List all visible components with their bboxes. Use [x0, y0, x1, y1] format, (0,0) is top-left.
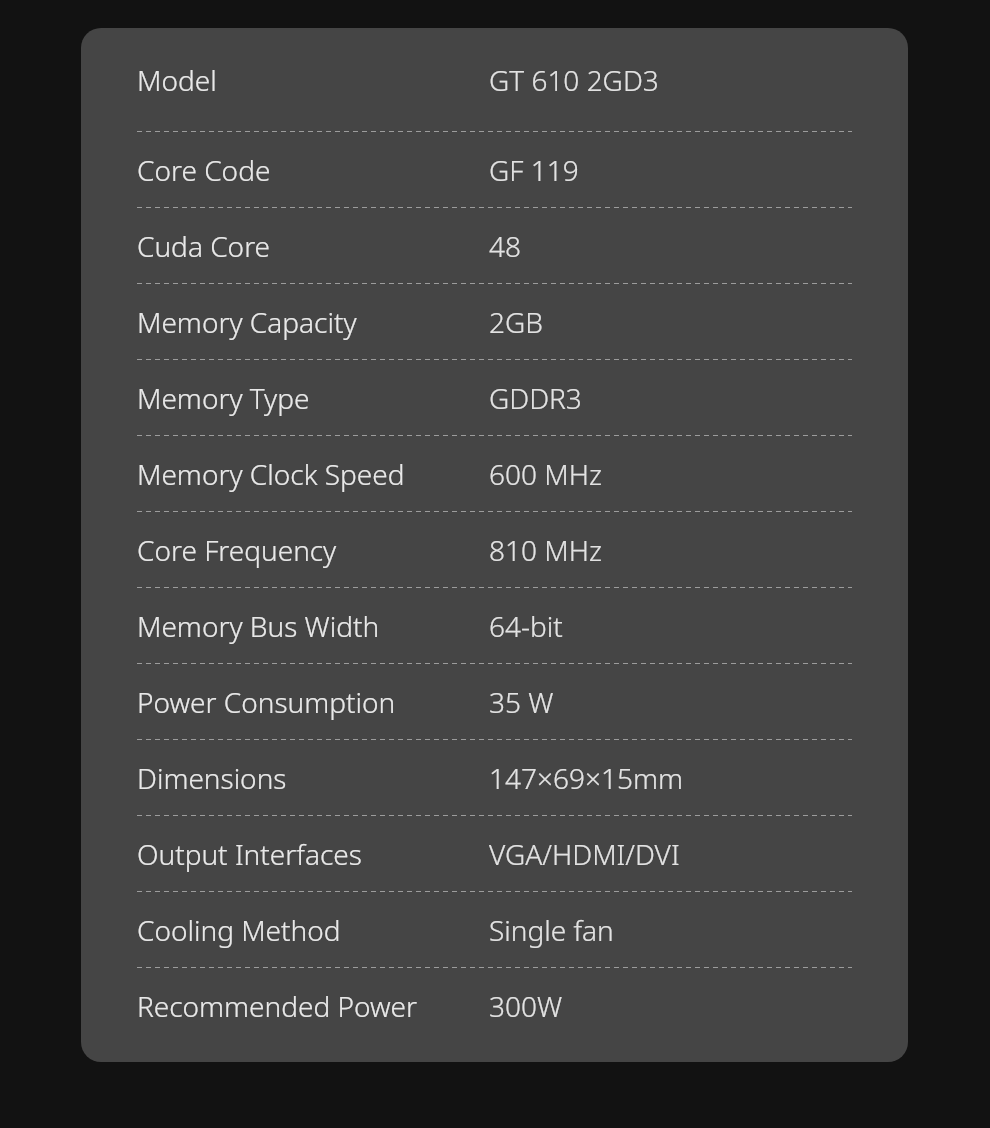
button[interactable]: Model — [137, 28, 852, 131]
staticText: 300W — [489, 987, 563, 1025]
staticText: Memory Bus Width — [137, 607, 489, 645]
staticText: 48 — [489, 227, 521, 265]
staticText: 2GB — [489, 303, 543, 341]
staticText: 810 MHz — [489, 531, 602, 569]
button[interactable]: Memory Clock Speed — [137, 436, 852, 511]
button[interactable]: Output Interfaces — [137, 816, 852, 891]
button[interactable]: Power Consumption — [137, 664, 852, 739]
staticText: Core Frequency — [137, 531, 489, 569]
staticText: Recommended Power — [137, 987, 489, 1025]
staticText: Power Consumption — [137, 683, 489, 721]
staticText: 600 MHz — [489, 455, 602, 493]
staticText: Core Code — [137, 151, 489, 189]
staticText: 64-bit — [489, 607, 563, 645]
staticText: Cooling Method — [137, 911, 489, 949]
button[interactable]: Memory Type — [137, 360, 852, 435]
button[interactable]: Cooling Method — [137, 892, 852, 967]
staticText: GDDR3 — [489, 379, 582, 417]
staticText: Output Interfaces — [137, 835, 489, 873]
button[interactable]: Memory Bus Width — [137, 588, 852, 663]
staticText: Cuda Core — [137, 227, 489, 265]
staticText: GT 610 2GD3 — [489, 61, 659, 99]
staticText: GF 119 — [489, 151, 579, 189]
staticText: VGA/HDMI/DVI — [489, 835, 680, 873]
staticText: 35 W — [489, 683, 554, 721]
button[interactable]: Core Frequency — [137, 512, 852, 587]
staticText: Memory Capacity — [137, 303, 489, 341]
staticText: Memory Type — [137, 379, 489, 417]
staticText: Dimensions — [137, 759, 489, 797]
button[interactable]: Core Code — [137, 132, 852, 207]
button[interactable]: Cuda Core — [137, 208, 852, 283]
button[interactable]: Memory Capacity — [137, 284, 852, 359]
button[interactable]: Recommended Power — [137, 968, 852, 1043]
staticText: Model — [137, 61, 489, 99]
staticText: Memory Clock Speed — [137, 455, 489, 493]
staticText: Single fan — [489, 911, 614, 949]
staticText: 147×69×15mm — [489, 759, 683, 797]
button[interactable]: Dimensions — [137, 740, 852, 815]
